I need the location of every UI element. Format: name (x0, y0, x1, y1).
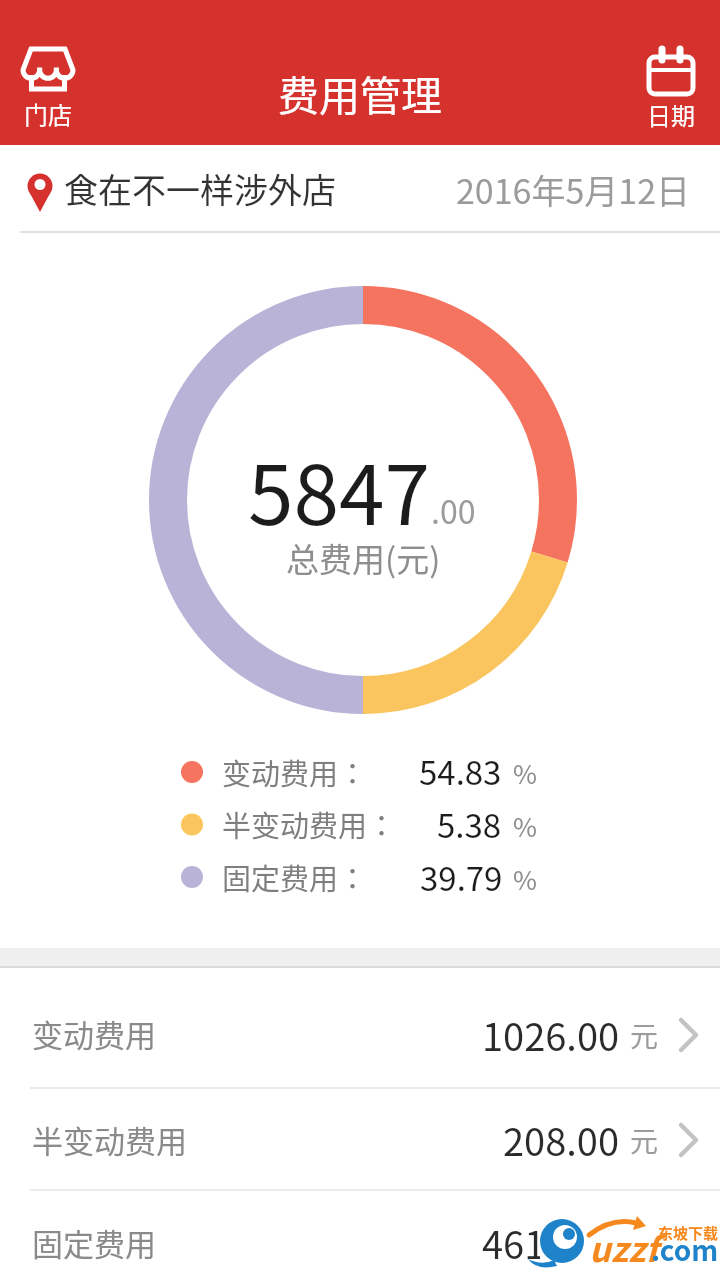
staticText: 半变动费用 (32, 1117, 187, 1162)
button[interactable] (0, 1191, 720, 1280)
staticText: 变动费用： (222, 751, 368, 793)
staticText: 东坡下载 (658, 1222, 719, 1244)
staticText: 54.83 (419, 747, 502, 795)
staticText: 5.38 (437, 800, 502, 848)
staticText: 固定费用： (222, 856, 368, 898)
staticText: % (513, 807, 537, 845)
staticText: 4613.00 (482, 1215, 620, 1270)
staticText: 总费用(元) (286, 534, 441, 582)
button[interactable] (0, 968, 720, 1087)
staticText: 208.00 (503, 1112, 620, 1167)
staticText: 固定费用 (32, 1220, 156, 1265)
staticText: 5847 (248, 430, 431, 549)
staticText: 39.79 (420, 853, 503, 901)
staticText: uzzf (589, 1223, 659, 1272)
staticText: 元 (630, 1120, 659, 1161)
staticText: % (513, 754, 537, 792)
staticText: .00 (431, 487, 476, 533)
staticText: 元 (630, 1015, 659, 1056)
staticText: .com (651, 1229, 719, 1270)
staticText: 2016年5月12日 (456, 165, 691, 214)
staticText: 半变动费用： (222, 803, 397, 845)
staticText: 费用管理 (278, 63, 442, 122)
staticText: 元 (630, 1223, 659, 1264)
staticText: 1026.00 (482, 1007, 620, 1062)
button[interactable] (12, 40, 84, 132)
staticText: % (513, 860, 537, 898)
staticText: 变动费用 (32, 1011, 156, 1056)
staticText: 门店 (24, 96, 72, 131)
button[interactable] (0, 145, 720, 232)
button[interactable] (0, 1089, 720, 1189)
staticText: 日期 (647, 97, 695, 132)
button[interactable] (636, 40, 708, 132)
staticText: 食在不一样涉外店 (64, 164, 336, 213)
